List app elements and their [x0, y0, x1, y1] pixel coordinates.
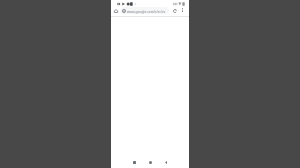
button[interactable]: Recents [129, 157, 140, 168]
button[interactable]: Home [112, 7, 119, 14]
button[interactable]: www.google.com/s/rc/cv [121, 7, 169, 14]
staticText: www.google.com/s/rc/cv [127, 9, 166, 13]
button[interactable]: Reload [171, 7, 179, 15]
button[interactable]: More options [179, 7, 185, 13]
button[interactable]: Home [145, 157, 156, 168]
button[interactable]: Back [160, 157, 171, 168]
